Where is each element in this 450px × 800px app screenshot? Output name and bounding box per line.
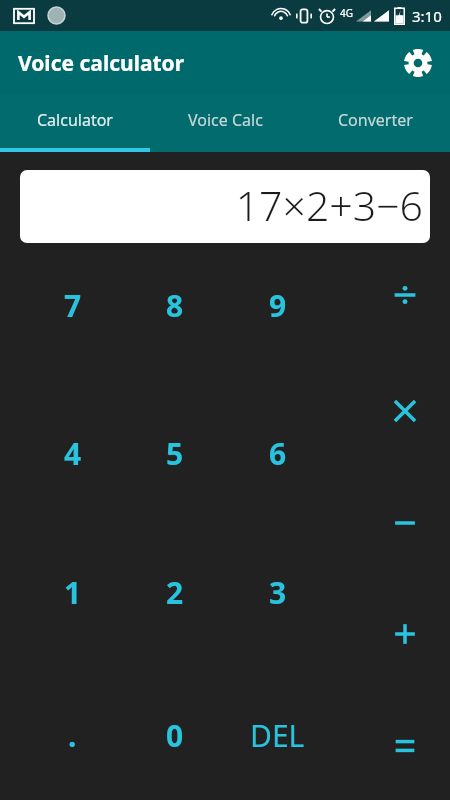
staticText: Voice Calc xyxy=(188,109,263,131)
staticText: 0 xyxy=(166,715,184,756)
button[interactable]: 5 xyxy=(123,383,226,522)
button[interactable]: 9 xyxy=(226,243,329,383)
staticText: 1 xyxy=(64,572,82,613)
button[interactable]: . xyxy=(0,661,123,800)
staticText: 3 xyxy=(269,572,287,613)
staticText: 2 xyxy=(166,572,184,613)
staticText: 4 xyxy=(64,433,82,474)
button[interactable]: Add xyxy=(354,578,450,689)
button[interactable]: 2 xyxy=(123,522,226,661)
button[interactable]: 8 xyxy=(123,243,226,383)
button[interactable]: Divide xyxy=(354,243,450,355)
staticText: 9 xyxy=(269,285,287,326)
button[interactable]: 1 xyxy=(0,522,123,661)
button[interactable]: 0 xyxy=(123,661,226,800)
staticText: 7 xyxy=(64,285,82,326)
button[interactable]: Settings xyxy=(400,45,436,81)
button[interactable]: Equals xyxy=(354,689,450,800)
button[interactable]: Converter xyxy=(300,95,450,152)
staticText: 8 xyxy=(166,285,184,326)
staticText: 17×2+3−6 xyxy=(235,177,423,233)
staticText: 5 xyxy=(166,433,184,474)
staticText: . xyxy=(68,715,77,756)
button[interactable]: DEL xyxy=(226,661,329,800)
staticText: 6 xyxy=(269,433,287,474)
button[interactable]: 7 xyxy=(0,243,123,383)
staticText: DEL xyxy=(250,715,305,756)
staticText: 3:10 xyxy=(412,6,442,26)
button[interactable]: 3 xyxy=(226,522,329,661)
staticText: Converter xyxy=(338,109,413,131)
staticText: 4G xyxy=(340,6,353,20)
button[interactable]: Calculator xyxy=(0,95,150,152)
button[interactable]: 4 xyxy=(0,383,123,522)
button[interactable]: 17×2+3−6 xyxy=(20,170,430,243)
button[interactable]: Voice Calc xyxy=(150,95,300,152)
button[interactable]: Subtract xyxy=(354,467,450,578)
button[interactable]: Multiply xyxy=(354,355,450,467)
staticText: Voice calculator xyxy=(18,49,185,78)
button[interactable]: 6 xyxy=(226,383,329,522)
staticText: Calculator xyxy=(37,109,113,131)
